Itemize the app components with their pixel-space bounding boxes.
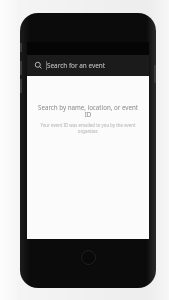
other: Search [34, 61, 43, 70]
staticText: Search for an event [47, 61, 106, 70]
staticText: Search by name, location, or event ID [34, 103, 142, 119]
button[interactable]: Search [27, 55, 149, 76]
button[interactable]: Home [80, 249, 97, 266]
staticText: Your event ID was emailed to you by the … [39, 122, 137, 134]
